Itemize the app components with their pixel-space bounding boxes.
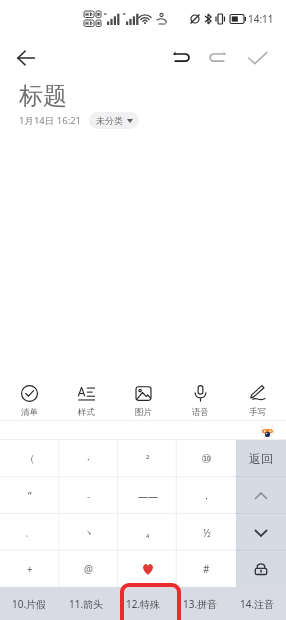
staticText: 未分类 xyxy=(96,115,123,126)
staticText: · xyxy=(87,452,90,466)
staticText: ， xyxy=(202,490,211,501)
staticText: ½ xyxy=(203,526,211,540)
staticText: 1月14日 16:21 xyxy=(19,114,82,127)
staticText: 标题 xyxy=(19,81,67,111)
button[interactable]: down xyxy=(236,514,286,551)
staticText: 13.拼音 xyxy=(183,597,218,611)
button[interactable]: 样式 xyxy=(58,370,115,420)
staticText: ⑩ xyxy=(201,452,212,466)
button[interactable]: 11.箭头 xyxy=(58,587,115,620)
other: up xyxy=(252,487,270,505)
button[interactable]: （ xyxy=(0,440,59,477)
button[interactable]: 未分类 xyxy=(89,112,139,129)
staticText: 、 xyxy=(25,527,34,538)
other: down xyxy=(252,524,270,542)
staticText: - xyxy=(87,490,90,502)
button[interactable]: ⑩ xyxy=(177,440,236,477)
staticText: 返回 xyxy=(249,451,273,466)
staticText: # xyxy=(203,562,210,576)
button[interactable]: 10.片假 xyxy=(0,587,58,620)
button[interactable]: @ xyxy=(59,550,118,587)
staticText: @ xyxy=(84,562,93,576)
staticText: —— xyxy=(138,489,158,503)
staticText: （ xyxy=(25,452,35,465)
staticText: ヽ xyxy=(84,527,93,538)
staticText: ² xyxy=(146,452,150,466)
staticText: 图片 xyxy=(135,407,152,418)
other: lock xyxy=(250,558,272,580)
button[interactable]: ” xyxy=(0,477,59,514)
staticText: ₄ xyxy=(146,527,150,539)
button[interactable]: 语音 xyxy=(172,370,229,420)
button[interactable]: lock xyxy=(236,550,286,587)
button[interactable]: 清单 xyxy=(0,370,58,420)
staticText: 10.片假 xyxy=(12,597,47,611)
button[interactable]: 14.注音 xyxy=(229,587,286,620)
button[interactable]: —— xyxy=(118,477,177,514)
staticText: 14.注音 xyxy=(240,597,275,611)
button[interactable]: Back xyxy=(11,43,41,73)
button[interactable]: 手写 xyxy=(229,370,286,420)
button[interactable]: 图片 xyxy=(115,370,172,420)
button[interactable]: Done xyxy=(242,42,274,74)
button[interactable]: # xyxy=(177,550,236,587)
button[interactable]: 12.特殊 xyxy=(115,587,172,620)
button[interactable]: heart xyxy=(118,550,177,587)
button[interactable]: 、 xyxy=(0,514,59,551)
button[interactable]: 13.拼音 xyxy=(172,587,229,620)
button[interactable]: ， xyxy=(177,477,236,514)
button[interactable]: ヽ xyxy=(59,514,118,551)
staticText: ” xyxy=(28,489,32,503)
button[interactable]: Undo xyxy=(165,42,197,74)
button[interactable]: - xyxy=(59,477,118,514)
button[interactable]: + xyxy=(0,550,59,587)
button[interactable]: ½ xyxy=(177,514,236,551)
staticText: 清单 xyxy=(21,407,38,418)
staticText: 14:11 xyxy=(248,12,274,26)
button[interactable]: ² xyxy=(118,440,177,477)
staticText: 12.特殊 xyxy=(126,597,161,611)
button[interactable]: ₄ xyxy=(118,514,177,551)
other: heart xyxy=(142,563,154,575)
staticText: 样式 xyxy=(78,407,95,418)
staticText: 语音 xyxy=(192,407,209,418)
button[interactable]: Redo xyxy=(202,42,234,74)
staticText: 手写 xyxy=(249,407,266,418)
staticText: + xyxy=(27,562,33,576)
button[interactable]: 返回 xyxy=(236,440,286,477)
button[interactable]: up xyxy=(236,477,286,514)
button[interactable]: · xyxy=(59,440,118,477)
staticText: 11.箭头 xyxy=(69,597,104,611)
